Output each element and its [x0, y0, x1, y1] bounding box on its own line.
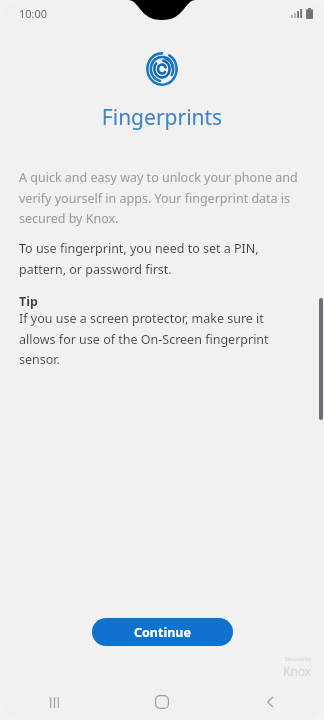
staticText: Fingerprints: [0, 103, 324, 132]
staticText: 10:00: [19, 6, 48, 21]
staticText: Knox: [283, 663, 312, 679]
button[interactable]: Home: [108, 684, 216, 720]
staticText: To use fingerprint, you need to set a PI…: [19, 240, 300, 277]
button[interactable]: Continue: [92, 618, 233, 646]
staticText: Tip: [19, 293, 38, 310]
button[interactable]: Back: [216, 684, 324, 720]
staticText: Secured by: [285, 656, 311, 663]
staticText: If you use a screen protector, make sure…: [19, 310, 300, 367]
staticText: A quick and easy way to unlock your phon…: [19, 169, 300, 226]
button[interactable]: Recents: [0, 684, 108, 720]
staticText: Continue: [134, 624, 191, 641]
